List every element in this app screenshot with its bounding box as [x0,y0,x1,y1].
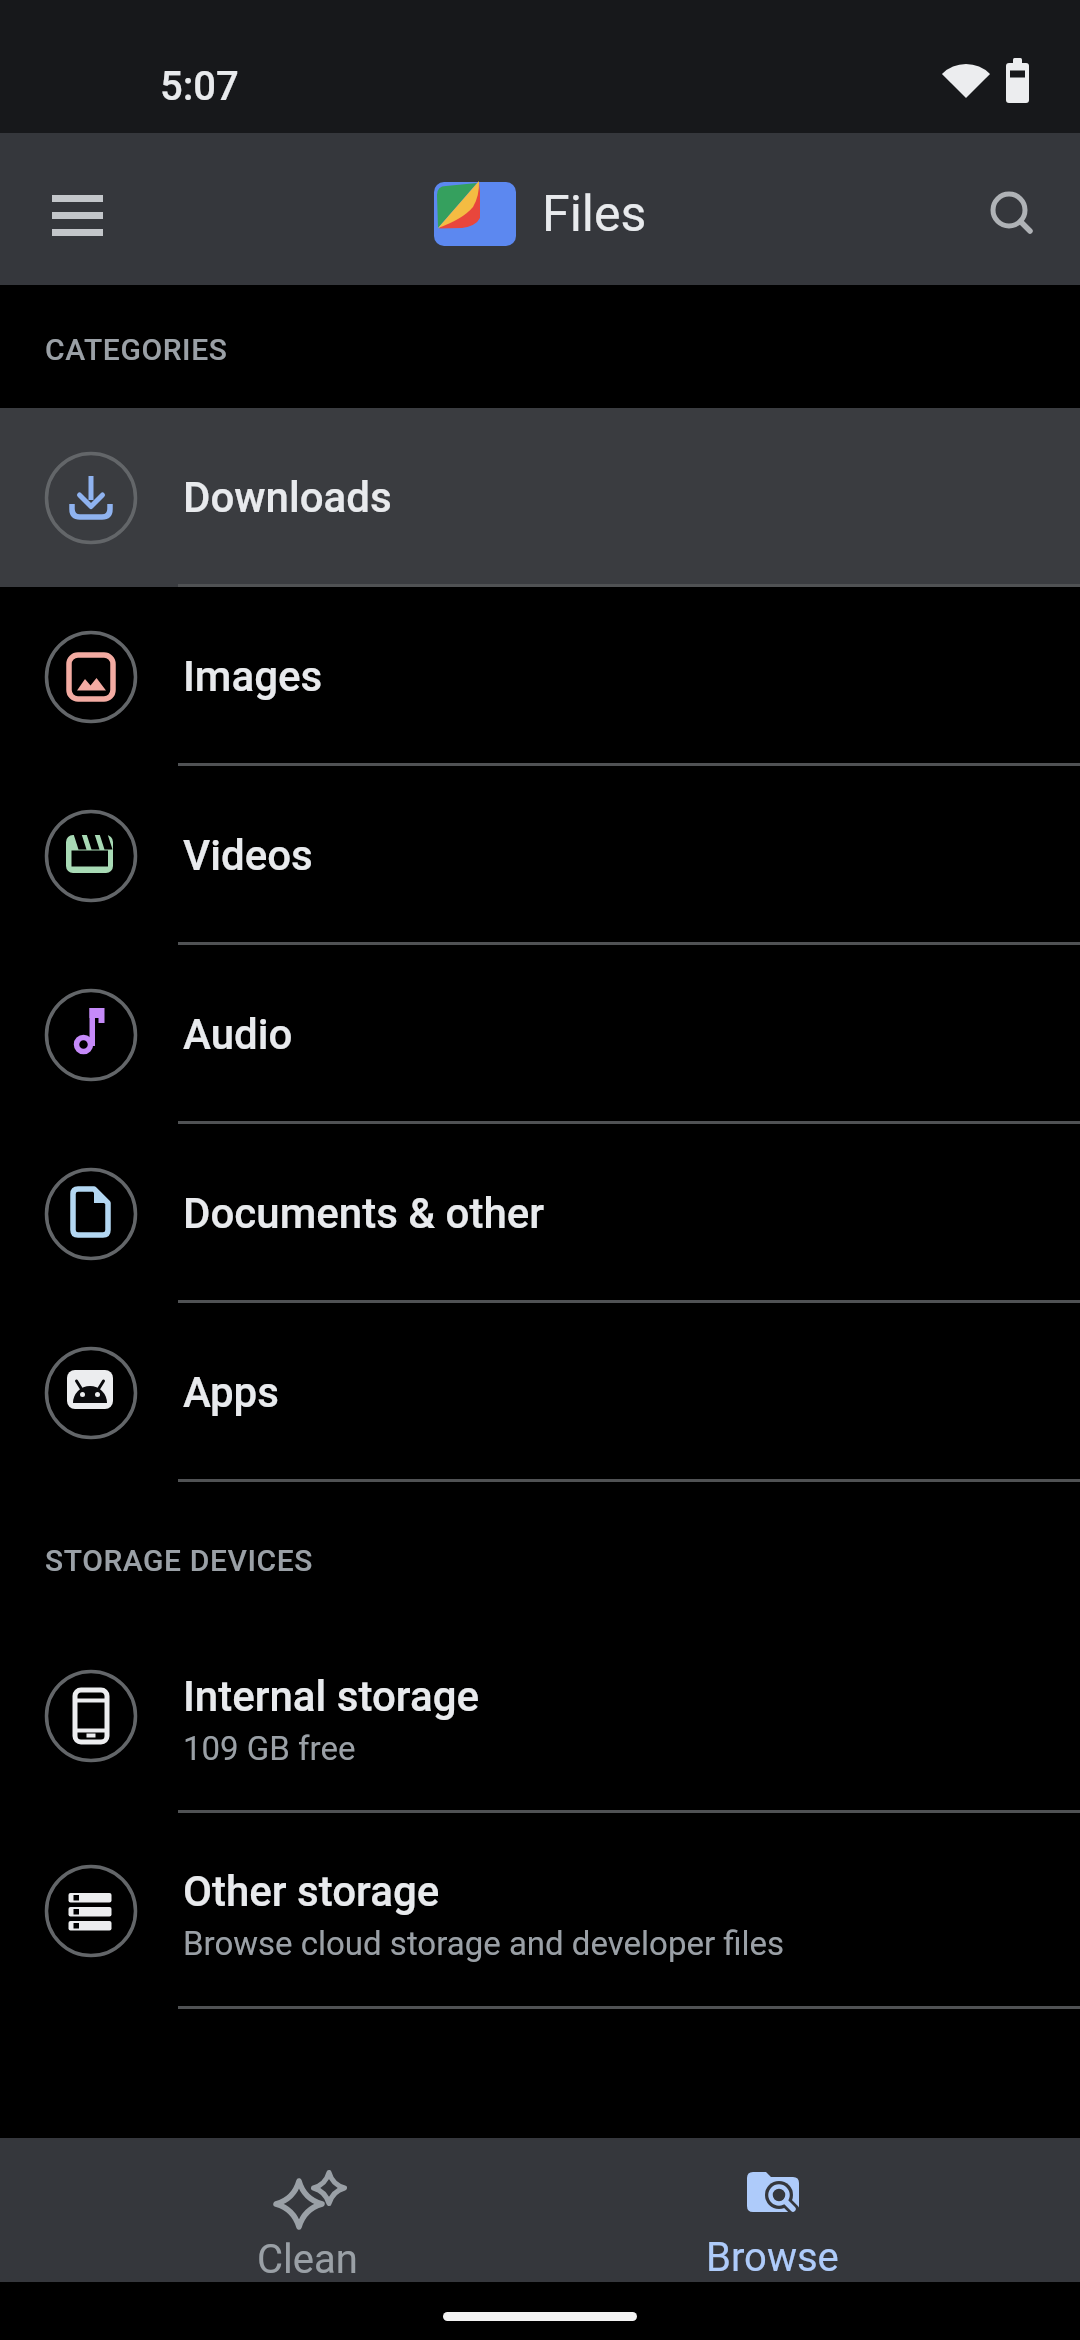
staticText: CATEGORIES [45,332,228,367]
button[interactable]: Apps [0,1303,1080,1482]
staticText: Files [542,185,647,244]
staticText: 109 GB free [183,1729,356,1768]
staticText: Audio [183,1010,293,1059]
button[interactable]: Other storage [0,1813,1080,2009]
staticText: Apps [183,1368,279,1417]
staticText: Images [183,652,323,701]
staticText: Browse cloud storage and developer files [183,1924,785,1963]
button[interactable] [30,168,124,262]
staticText: STORAGE DEVICES [45,1543,314,1578]
staticText: Internal storage [183,1672,480,1721]
staticText: Downloads [183,473,392,522]
button[interactable]: Downloads [0,408,1080,587]
button[interactable]: Videos [0,766,1080,945]
staticText: Clean [257,2236,358,2282]
staticText: Other storage [183,1867,440,1916]
staticText: Documents & other [183,1189,545,1238]
button[interactable]: Images [0,587,1080,766]
button[interactable]: Documents & other [0,1124,1080,1303]
staticText: 5:07 [160,63,239,110]
button[interactable]: Browse [540,2138,1005,2282]
button[interactable]: Internal storage [0,1618,1080,1813]
button[interactable]: Audio [0,945,1080,1124]
button[interactable]: Clean [75,2138,540,2282]
staticText: Videos [183,831,313,880]
button[interactable] [964,164,1058,258]
staticText: Browse [706,2234,839,2281]
